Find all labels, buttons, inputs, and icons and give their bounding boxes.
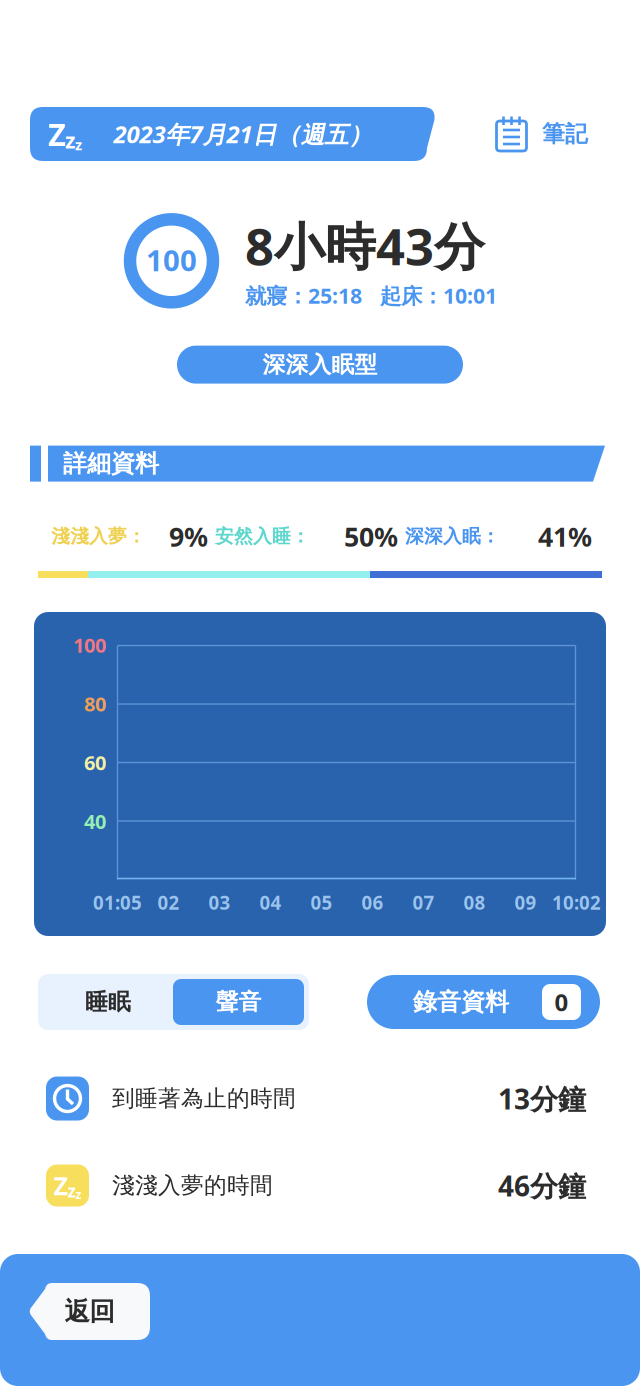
staticText: Z — [53, 1169, 68, 1202]
staticText: 返回 — [64, 1296, 114, 1327]
staticText: 02 — [157, 890, 179, 915]
button[interactable]: Z — [0, 1142, 640, 1229]
staticText: 13分鐘 — [498, 1080, 586, 1117]
staticText: z — [75, 135, 82, 154]
staticText: 10:02 — [552, 890, 601, 915]
staticText: 深深入眠型 — [262, 351, 377, 378]
staticText: 80 — [84, 690, 106, 717]
staticText: 2023年7月21日（週五） — [113, 118, 372, 150]
staticText: 06 — [361, 890, 383, 915]
staticText: 46分鐘 — [498, 1167, 586, 1204]
staticText: z — [75, 1186, 81, 1202]
staticText: 41% — [538, 519, 592, 554]
staticText: 淺淺入夢的時間 — [112, 1172, 273, 1199]
staticText: 100 — [73, 632, 106, 658]
staticText: 05 — [310, 890, 332, 915]
staticText: 60 — [84, 749, 106, 776]
staticText: 09 — [514, 890, 536, 915]
staticText: 錄音資料 — [413, 987, 509, 1017]
button[interactable]: 錄音資料 — [367, 975, 600, 1029]
staticText: 淺淺入夢： — [51, 525, 146, 548]
button[interactable]: 深深入眠型 — [177, 346, 463, 384]
button[interactable]: 睡眠 — [43, 979, 173, 1025]
staticText: 聲音 — [215, 988, 261, 1016]
staticText: 07 — [412, 890, 434, 915]
staticText: 深深入眠： — [405, 525, 500, 548]
staticText: z — [65, 126, 76, 154]
staticText: 0 — [554, 986, 568, 1018]
button[interactable]: Z — [30, 107, 436, 161]
staticText: 50% — [344, 519, 398, 554]
staticText: 睡眠 — [85, 988, 131, 1016]
staticText: 100 — [146, 240, 197, 279]
staticText: 9% — [169, 519, 208, 554]
button[interactable]: 返回 — [29, 1283, 150, 1340]
staticText: 8小時43分 — [245, 212, 485, 279]
staticText: 40 — [84, 808, 106, 834]
staticText: 01:05 — [93, 890, 142, 915]
staticText: 筆記 — [542, 120, 588, 148]
staticText: 就寢：25:18 — [245, 281, 362, 310]
staticText: 03 — [208, 890, 230, 915]
button[interactable]: 到睡著為止的時間 — [0, 1055, 640, 1142]
button[interactable]: 聲音 — [173, 979, 304, 1025]
staticText: 詳細資料 — [63, 449, 159, 478]
staticText: 04 — [259, 890, 281, 915]
staticText: Z — [48, 114, 66, 154]
staticText: 起床：10:01 — [380, 281, 497, 310]
staticText: z — [67, 1179, 76, 1202]
staticText: 安然入睡： — [215, 525, 310, 548]
staticText: 到睡著為止的時間 — [112, 1085, 296, 1112]
button[interactable]: 筆記 — [495, 107, 613, 161]
staticText: 08 — [463, 890, 485, 915]
